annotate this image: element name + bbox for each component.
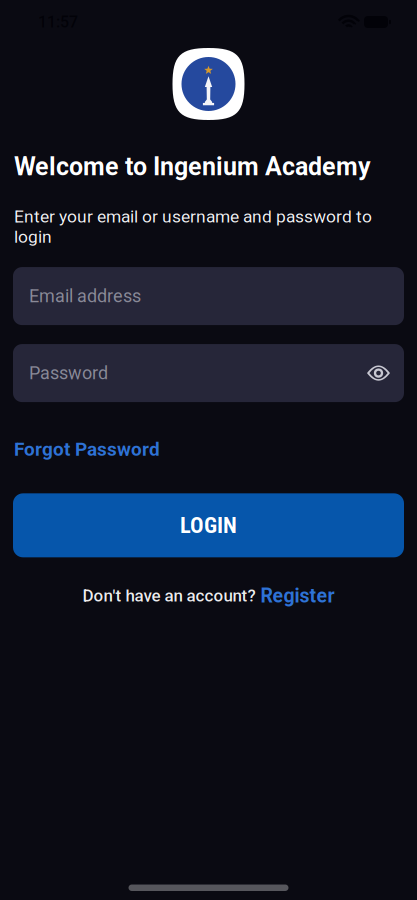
staticText: LOGIN bbox=[180, 512, 237, 539]
staticText: Email address bbox=[29, 285, 141, 307]
button[interactable]: Password bbox=[0, 344, 417, 402]
button[interactable]: LOGIN bbox=[0, 493, 417, 557]
button[interactable]: Forgot Password bbox=[0, 438, 417, 460]
button[interactable]: Register bbox=[260, 584, 334, 607]
staticText: Password bbox=[29, 362, 108, 384]
staticText: Enter your email or username and passwor… bbox=[14, 206, 372, 247]
staticText: Register bbox=[260, 584, 334, 607]
staticText: 11:57 bbox=[38, 13, 78, 31]
staticText: Welcome to Ingenium Academy bbox=[14, 152, 371, 181]
staticText: Don't have an account? bbox=[82, 586, 255, 606]
button[interactable]: Email address bbox=[0, 267, 417, 325]
staticText: Forgot Password bbox=[14, 438, 160, 460]
